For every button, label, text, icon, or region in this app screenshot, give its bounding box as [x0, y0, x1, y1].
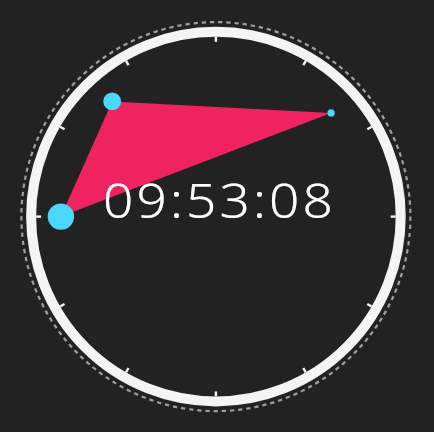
staticText: 09:53:08: [102, 168, 336, 232]
button[interactable]: Analog watch face showing 09:53:08: [0, 0, 434, 432]
